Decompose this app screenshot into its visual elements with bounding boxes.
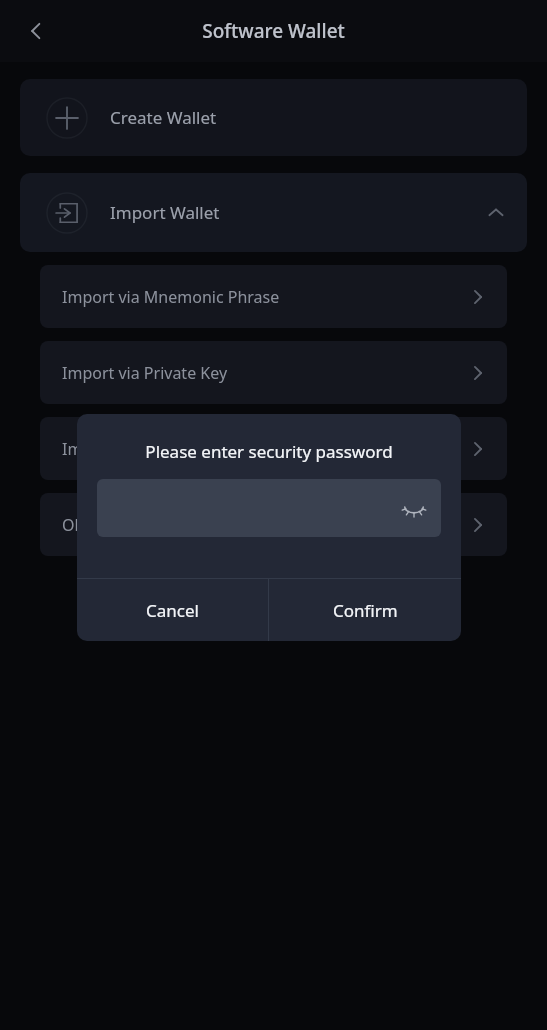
staticText: Import Wallet [110,201,485,224]
staticText: Please enter security password [77,440,461,463]
button[interactable]: Cancel [77,579,268,641]
button[interactable]: Back [12,7,60,55]
button[interactable]: Import via Mnemonic Phrase [40,265,507,328]
staticText: Import via Keystore [62,438,467,460]
button[interactable]: Confirm [269,579,461,641]
staticText: Create Wallet [110,106,217,129]
button[interactable]: Import Wallet [20,173,527,252]
staticText: Cancel [146,599,199,622]
button[interactable]: Create Wallet [20,79,527,156]
button[interactable]: Show password [97,479,441,537]
staticText: Import via Mnemonic Phrase [62,286,467,308]
button[interactable]: Observe Wallet [40,493,507,556]
staticText: Confirm [333,599,398,622]
button[interactable]: Import via Private Key [40,341,507,404]
button[interactable]: Show password [397,491,431,525]
staticText: Software Wallet [202,18,345,44]
staticText: Import via Private Key [62,362,467,384]
button[interactable]: Import via Keystore [40,417,507,480]
staticText: Observe Wallet [62,514,467,536]
